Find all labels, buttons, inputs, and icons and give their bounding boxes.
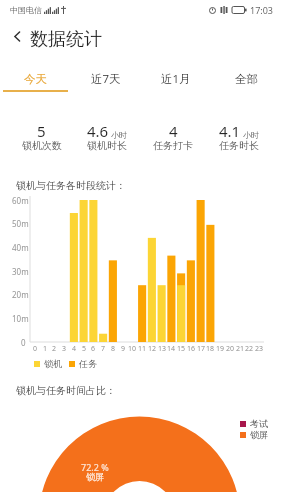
staticText: 4 [72,344,77,354]
staticText: 任务时长 [219,139,259,152]
staticText: 20m [12,289,29,300]
staticText: 5 [82,344,87,354]
staticText: 锁机次数 [22,139,62,152]
staticText: 4 [169,121,178,141]
staticText: 4.1 [219,121,241,141]
staticText: 50m [12,218,29,229]
staticText: 17:03 [250,4,274,16]
button[interactable]: 返回 [6,25,28,47]
button[interactable]: 锁屏 [240,429,268,440]
staticText: 15 [177,344,186,354]
staticText: 6 [91,344,96,354]
staticText: 任务 [79,358,97,369]
button[interactable]: 近7天 [71,66,141,91]
staticText: 中国电信 [10,5,42,15]
staticText: 近1月 [161,71,191,87]
staticText: 13 [158,344,167,354]
button[interactable]: 4 [140,121,206,154]
staticText: 任务打卡 [153,139,193,152]
staticText: 小时 [243,130,259,140]
staticText: 72.2 % [81,461,109,473]
staticText: 18 [206,344,215,354]
button[interactable]: 全部 [211,66,281,91]
staticText: 21 [236,344,245,354]
staticText: 0 [33,344,38,354]
staticText: 10 [128,344,137,354]
staticText: 2 [52,344,57,354]
staticText: 近7天 [91,71,121,87]
button[interactable]: 考试 [240,418,268,429]
staticText: 锁机时长 [87,139,127,152]
staticText: 8 [111,344,116,354]
staticText: 19 [216,344,225,354]
staticText: 30m [12,266,29,277]
staticText: 11 [138,344,147,354]
staticText: 3 [62,344,67,354]
staticText: 17 [197,344,206,354]
staticText: 10m [12,313,29,324]
staticText: 锁屏 [250,429,268,440]
button[interactable]: 4.1 [206,121,272,154]
button[interactable]: 4.6 [74,121,140,154]
staticText: 22 [245,344,254,354]
staticText: 40m [12,242,29,253]
staticText: 4.6 [87,121,109,141]
staticText: 9 [121,344,126,354]
staticText: 7 [101,344,106,354]
staticText: 锁机 [44,358,62,369]
staticText: 14 [167,344,176,354]
staticText: 1 [43,344,48,354]
staticText: 小时 [111,130,127,140]
staticText: 锁机与任务各时段统计： [16,179,126,192]
staticText: 16 [187,344,196,354]
staticText: 考试 [250,418,268,429]
staticText: 锁屏 [86,471,104,482]
staticText: 0 [21,337,26,348]
staticText: 锁机与任务时间占比： [16,384,116,397]
staticText: 数据统计 [30,28,102,51]
button[interactable]: 近1月 [141,66,211,91]
staticText: 今天 [24,72,47,86]
button[interactable]: 5 [9,121,74,154]
staticText: 5 [37,121,46,141]
staticText: 20 [226,344,235,354]
button[interactable]: 今天 [0,66,71,91]
staticText: 23 [255,344,264,354]
staticText: 12 [148,344,157,354]
staticText: 全部 [235,72,258,86]
staticText: 60m [12,195,29,206]
